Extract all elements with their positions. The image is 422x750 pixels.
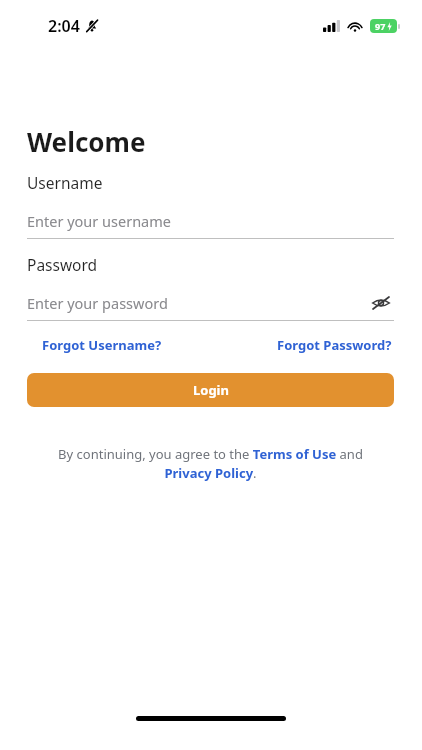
staticText: Forgot Username? [42,336,162,354]
button[interactable]: Enter your username [27,209,394,239]
staticText: Forgot Password? [277,336,392,354]
button[interactable]: Login [27,373,394,407]
staticText: Enter your username [27,211,394,231]
staticText: By continuing, you agree to the Terms of… [49,445,372,482]
staticText: Enter your password [27,293,368,313]
button[interactable]: Forgot Password? [275,333,394,357]
staticText: Login [193,381,229,399]
staticText: 97 [375,20,386,32]
staticText: Username [27,172,103,193]
staticText: Password [27,254,98,275]
button[interactable]: Forgot Username? [40,333,164,357]
button[interactable]: Show password [368,291,394,315]
staticText: Welcome [27,124,146,159]
button[interactable]: Enter your password [27,291,394,321]
button[interactable]: By continuing, you agree to the Terms of… [49,445,372,482]
staticText: 2:04 [48,15,80,37]
